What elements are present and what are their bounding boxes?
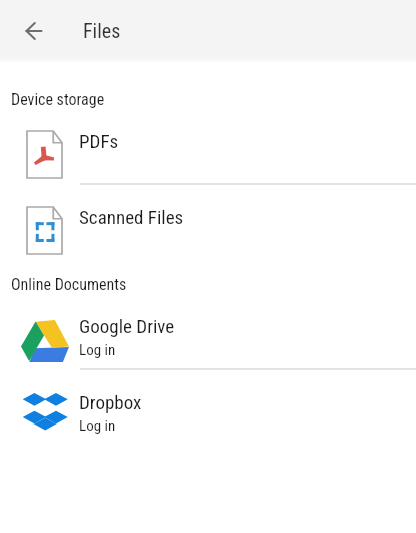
button[interactable]: Back xyxy=(14,11,54,51)
staticText: Device storage xyxy=(11,90,105,109)
staticText: Log in xyxy=(79,341,116,359)
staticText: PDFs xyxy=(79,130,119,152)
staticText: Log in xyxy=(79,417,116,435)
staticText: Google Drive xyxy=(79,315,175,337)
staticText: Dropbox xyxy=(79,391,142,413)
staticText: Scanned Files xyxy=(79,206,184,228)
staticText: Online Documents xyxy=(11,275,127,294)
staticText: Files xyxy=(83,19,121,42)
